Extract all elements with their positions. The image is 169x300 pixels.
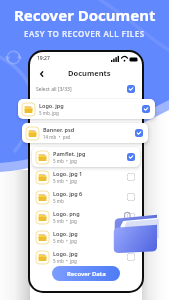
button[interactable]: Select file [127,253,135,261]
staticText: 5 mb [53,198,64,204]
staticText: 5 mb • jpg [53,178,77,184]
staticText: Documents [68,68,111,78]
button[interactable]: Logo. jpg [32,227,140,247]
button[interactable]: Select file [127,213,135,221]
staticText: Recover Document [14,5,156,25]
staticText: Logo. png [53,210,80,217]
button[interactable]: Select file [142,105,150,113]
staticText: 5 mb • jpg [53,238,77,244]
button[interactable]: Select file [127,233,135,241]
button[interactable]: Logo. jpg [32,247,140,267]
button[interactable]: Logo. jpg 6 [32,187,140,207]
staticText: Logo. jpg 6 [53,190,83,197]
button[interactable]: Select file [127,153,135,161]
staticText: 5 mb • jpg [53,258,77,264]
staticText: 5 mb • jpg [53,158,77,164]
button[interactable]: Select file [127,173,135,181]
staticText: EASY TO RECOVER ALL FILES [24,28,145,39]
button[interactable]: Select file [135,129,143,137]
button[interactable]: Logo. jpg [18,99,155,119]
button[interactable]: Pamflet. jpg [32,147,140,167]
staticText: Banner. psd [43,126,75,133]
staticText: 5 mb. jpg [39,110,59,116]
button[interactable]: Back [36,68,47,79]
button[interactable]: Recover Data [52,266,120,281]
button[interactable]: Logo. png [32,207,140,227]
button[interactable]: Select file [127,193,135,201]
staticText: Logo. jpg [53,250,78,257]
staticText: 14 mb • psd [43,134,71,140]
staticText: 19:27 [37,55,50,62]
button[interactable]: Logo. jpg 1 [32,167,140,187]
staticText: 5 mb • jpg [53,218,77,224]
button[interactable]: Banner. psd [22,123,148,143]
staticText: Logo. jpg 1 [53,170,83,177]
staticText: Pamflet. jpg [53,150,86,157]
staticText: Select all [3/33] [36,86,72,93]
button[interactable]: Select file [127,85,135,93]
staticText: Logo. jpg [53,230,78,237]
staticText: Recover Data [67,270,106,278]
staticText: Logo. jpg [39,102,64,109]
